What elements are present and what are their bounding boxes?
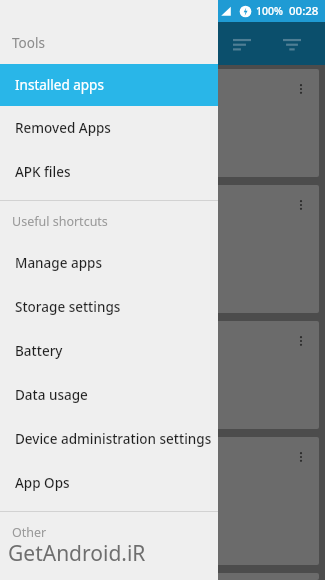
staticText: …ame:	[16, 389, 57, 407]
button[interactable]: Filter	[273, 25, 311, 63]
button[interactable]: App Ops	[0, 461, 218, 505]
button[interactable]: Removed Apps	[0, 106, 218, 150]
button[interactable]: Sort	[223, 25, 261, 63]
button[interactable]: …ax.global	[6, 437, 319, 565]
staticText: Tools	[12, 34, 45, 52]
button[interactable]: More options	[6, 573, 319, 580]
staticText: Installed apps	[15, 76, 104, 94]
button[interactable]: …otos	[6, 69, 319, 177]
button[interactable]: More options	[289, 77, 313, 101]
staticText: Storage settings	[15, 298, 121, 316]
button[interactable]: Battery	[0, 329, 218, 373]
staticText: …rsion name:	[16, 505, 99, 523]
staticText: Battery	[15, 342, 63, 360]
button[interactable]: APK files	[0, 150, 218, 194]
button[interactable]: …oid.benchm	[6, 185, 319, 313]
staticText: Removed Apps	[15, 119, 111, 137]
button[interactable]: Installed apps	[0, 64, 218, 106]
staticText: …ery	[16, 353, 46, 371]
button[interactable]: More options	[289, 445, 313, 469]
button[interactable]: Storage settings	[0, 285, 218, 329]
button[interactable]: Device administration settings	[0, 417, 218, 461]
staticText: Other	[12, 524, 47, 541]
staticText: Device administration settings	[15, 430, 212, 448]
button[interactable]: More options	[289, 193, 313, 217]
staticText: 100%	[256, 4, 283, 18]
button[interactable]: …ery	[6, 321, 319, 429]
staticText: …otos	[16, 101, 53, 119]
staticText: …ax.global	[16, 469, 82, 487]
staticText: APK files	[15, 163, 71, 181]
staticText: Data usage	[15, 386, 88, 404]
staticText: …oid.benchm	[16, 217, 99, 235]
button[interactable]: Manage apps	[0, 241, 218, 285]
staticText: App Ops	[15, 474, 70, 492]
staticText: 00:28	[289, 3, 319, 19]
staticText: Useful shortcuts	[12, 213, 108, 230]
button[interactable]: Data usage	[0, 373, 218, 417]
button[interactable]: More options	[289, 329, 313, 353]
staticText: …ame:	[16, 253, 57, 271]
staticText: Manage apps	[15, 254, 102, 272]
staticText: GetAndroid.iR	[8, 539, 146, 568]
